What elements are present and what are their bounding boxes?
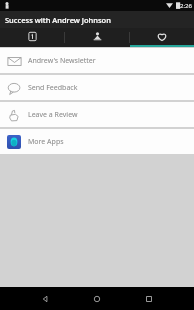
staticText: More Apps: [28, 137, 64, 147]
button[interactable]: Back: [19, 287, 71, 310]
button[interactable]: Recent apps: [123, 287, 175, 310]
staticText: Leave a Review: [28, 110, 78, 120]
staticText: Success with Andrew Johnson: [5, 15, 111, 25]
button[interactable]: Profile: [65, 28, 129, 47]
button[interactable]: Favourites: [130, 28, 194, 47]
button[interactable]: Leave a Review: [0, 102, 194, 127]
staticText: Send Feedback: [28, 83, 78, 93]
button[interactable]: Send Feedback: [0, 75, 194, 100]
button[interactable]: More Apps: [0, 129, 194, 154]
staticText: 2:26: [180, 2, 192, 10]
button[interactable]: Library: [0, 28, 64, 47]
button[interactable]: Home: [71, 287, 123, 310]
staticText: Andrew's Newsletter: [28, 56, 96, 66]
button[interactable]: Andrew's Newsletter: [0, 48, 194, 73]
